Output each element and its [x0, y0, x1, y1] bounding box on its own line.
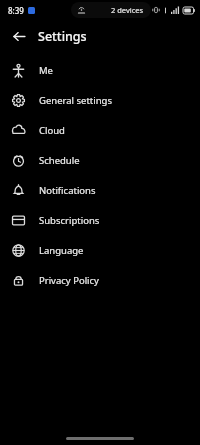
staticText: Notifications — [39, 184, 96, 197]
button[interactable]: General settings — [0, 85, 200, 115]
button[interactable]: Notifications — [0, 175, 200, 205]
button[interactable]: Privacy Policy — [0, 265, 200, 295]
staticText: Schedule — [39, 154, 80, 167]
button[interactable]: Me — [0, 55, 200, 85]
staticText: Language — [39, 244, 84, 257]
button[interactable]: Cloud — [0, 115, 200, 145]
button[interactable]: Subscriptions — [0, 205, 200, 235]
staticText: Cloud — [39, 124, 65, 137]
button[interactable]: Schedule — [0, 145, 200, 175]
staticText: Me — [39, 64, 53, 77]
staticText: Privacy Policy — [39, 274, 99, 287]
staticText: 2 devices — [111, 5, 144, 15]
staticText: Settings — [38, 28, 87, 45]
staticText: Subscriptions — [39, 214, 100, 227]
staticText: General settings — [39, 94, 112, 107]
button[interactable]: Language — [0, 235, 200, 265]
staticText: 8:39 — [8, 5, 24, 16]
button[interactable]: Back — [8, 25, 30, 47]
